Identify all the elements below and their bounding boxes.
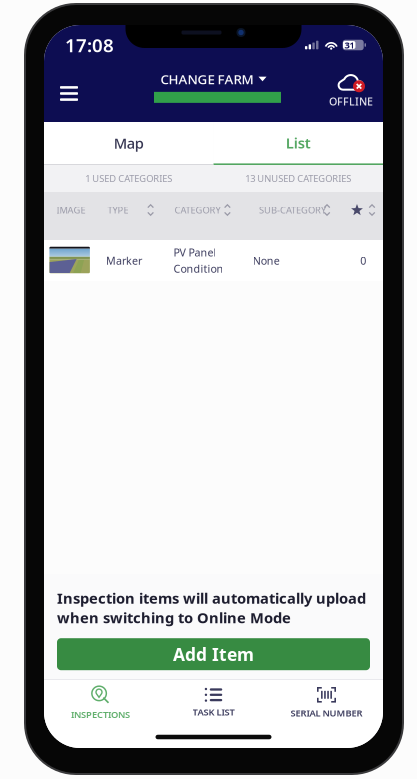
button[interactable]: Add Item	[57, 638, 370, 670]
button[interactable]: Menu	[48, 73, 90, 113]
button[interactable]: Map	[44, 122, 213, 165]
staticText: Marker	[106, 253, 142, 268]
staticText: SUB-CATEGORY	[259, 204, 326, 216]
staticText: CATEGORY	[174, 204, 220, 216]
staticText: 0	[360, 253, 366, 268]
staticText: 13 UNUSED CATEGORIES	[245, 172, 351, 185]
staticText: TYPE	[107, 204, 128, 216]
button[interactable]: OFFLINE	[323, 76, 379, 111]
button[interactable]: List	[213, 122, 383, 165]
staticText: IMAGE	[56, 204, 85, 216]
staticText: SERIAL NUMBER	[290, 707, 362, 719]
staticText: Add Item	[173, 643, 254, 666]
button[interactable]: TASK LIST	[157, 688, 270, 718]
staticText: Inspection items will automatically uplo…	[57, 588, 366, 627]
staticText: INSPECTIONS	[71, 708, 130, 721]
staticText: 17:08	[65, 33, 114, 57]
button[interactable]: INSPECTIONS	[44, 685, 157, 721]
button[interactable]: Marker	[44, 240, 383, 281]
staticText: 31	[344, 39, 354, 51]
staticText: Map	[114, 133, 144, 153]
staticText: CHANGE FARM	[160, 70, 253, 88]
staticText: List	[286, 133, 311, 152]
staticText: 1 USED CATEGORIES	[85, 172, 172, 185]
staticText: None	[253, 253, 280, 268]
staticText: OFFLINE	[329, 94, 373, 108]
button[interactable]: CHANGE FARM	[150, 77, 277, 110]
staticText: TASK LIST	[192, 706, 234, 718]
button[interactable]: SERIAL NUMBER	[270, 687, 383, 719]
staticText: PV Panel	[173, 245, 216, 259]
staticText: Condition	[173, 262, 223, 276]
